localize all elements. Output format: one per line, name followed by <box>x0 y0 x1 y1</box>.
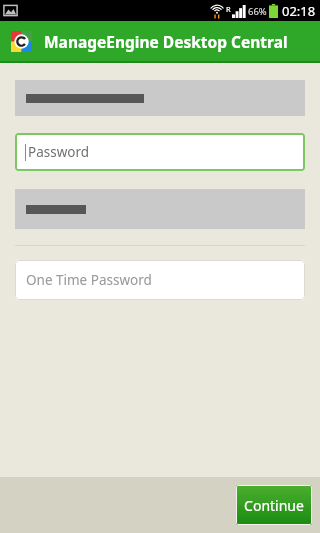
button[interactable]: Password <box>15 133 305 171</box>
staticText: ManageEngine Desktop Central <box>44 31 288 52</box>
staticText: R <box>226 4 231 14</box>
staticText: 66% <box>248 5 267 18</box>
staticText: 02:18 <box>282 2 316 20</box>
staticText: One Time Password <box>26 271 152 289</box>
button[interactable] <box>15 189 305 229</box>
button[interactable] <box>15 80 305 116</box>
staticText: Password <box>28 143 90 161</box>
staticText: Continue <box>244 496 304 515</box>
button[interactable]: One Time Password <box>15 260 305 300</box>
button[interactable]: Continue <box>236 485 312 525</box>
button[interactable]: ManageEngine Desktop Central <box>0 21 320 61</box>
